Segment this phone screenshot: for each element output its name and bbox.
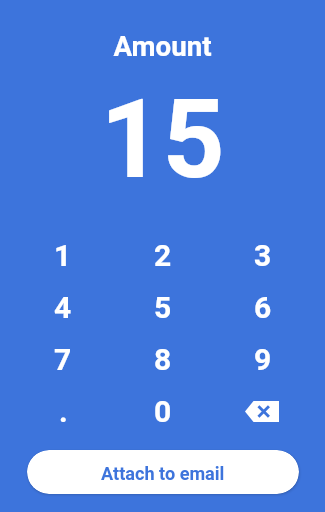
button[interactable]: 0 (113, 385, 213, 437)
button[interactable]: 3 (213, 229, 313, 281)
button[interactable]: 9 (213, 333, 313, 385)
staticText: 1 (54, 238, 72, 273)
staticText: 6 (254, 290, 272, 325)
staticText: Amount (0, 30, 325, 62)
staticText: 9 (254, 342, 272, 377)
button[interactable]: 7 (13, 333, 113, 385)
button[interactable]: Attach to email (27, 450, 299, 494)
button[interactable]: 4 (13, 281, 113, 333)
staticText: . (59, 394, 68, 429)
button[interactable]: 5 (113, 281, 213, 333)
staticText: 8 (154, 342, 172, 377)
staticText: 3 (254, 238, 272, 273)
other: Backspace (245, 401, 279, 422)
button[interactable]: 8 (113, 333, 213, 385)
staticText: Attach to email (101, 463, 225, 484)
button[interactable]: 1 (13, 229, 113, 281)
staticText: 7 (54, 342, 72, 377)
button[interactable]: . (13, 385, 113, 437)
staticText: 2 (154, 238, 172, 273)
button[interactable]: 2 (113, 229, 213, 281)
staticText: 15 (0, 76, 325, 203)
staticText: 0 (154, 394, 172, 429)
button[interactable]: Backspace (213, 385, 313, 437)
staticText: 5 (154, 290, 172, 325)
staticText: 4 (54, 290, 72, 325)
button[interactable]: 6 (213, 281, 313, 333)
